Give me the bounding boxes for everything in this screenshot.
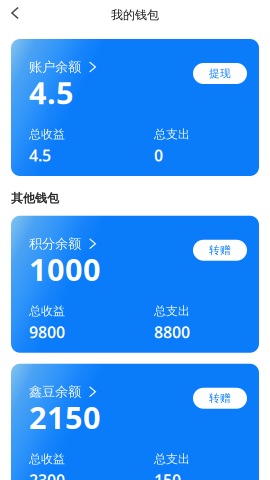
button[interactable]: Back (0, 0, 30, 26)
staticText: 1000 (29, 249, 101, 289)
staticText: 账户余额 (29, 59, 81, 75)
staticText: 总收益 (29, 304, 65, 318)
staticText: 总支出 (154, 127, 190, 142)
staticText: 4.5 (29, 145, 51, 166)
staticText: 8800 (154, 321, 190, 343)
staticText: 总支出 (154, 452, 190, 466)
button[interactable]: 账户余额 (11, 59, 104, 75)
button[interactable]: 积分余额 (11, 236, 104, 252)
staticText: 提现 (209, 67, 231, 80)
button[interactable]: 提现 (193, 63, 247, 84)
button[interactable]: 转赠 (193, 388, 247, 409)
staticText: 转赠 (209, 244, 231, 257)
staticText: 其他钱包 (11, 191, 59, 206)
staticText: 9800 (29, 321, 65, 343)
staticText: 鑫豆余额 (29, 384, 81, 400)
staticText: 总收益 (29, 452, 65, 466)
staticText: 积分余额 (29, 236, 81, 252)
staticText: 2300 (29, 469, 65, 480)
staticText: 总支出 (154, 304, 190, 318)
staticText: 我的钱包 (111, 8, 159, 22)
staticText: 转赠 (209, 392, 231, 405)
staticText: 4.5 (29, 72, 74, 113)
staticText: 总收益 (29, 127, 65, 142)
staticText: 2150 (29, 397, 101, 437)
button[interactable]: 鑫豆余额 (11, 384, 104, 400)
staticText: 0 (154, 145, 163, 166)
button[interactable]: 转赠 (193, 240, 247, 261)
staticText: 150 (154, 469, 181, 480)
